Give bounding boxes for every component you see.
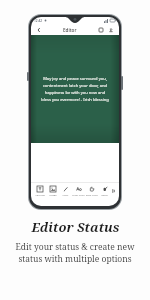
button[interactable]: Save xyxy=(107,26,115,34)
staticText: Color xyxy=(62,193,69,196)
button[interactable]: Back Color xyxy=(85,186,98,196)
button[interactable]: Front Color xyxy=(72,186,85,196)
button[interactable]: Reset xyxy=(98,186,111,196)
staticText: Editor Status xyxy=(31,218,120,236)
staticText: Editor xyxy=(63,27,77,33)
staticText: Edit your status & create new status wit… xyxy=(8,241,142,265)
button[interactable]: May joy and peace surround you, contentm… xyxy=(31,35,119,143)
button[interactable]: Add Text xyxy=(33,186,46,196)
staticText: Image xyxy=(49,193,57,196)
staticText: Back Color xyxy=(86,193,98,196)
button[interactable]: Back xyxy=(35,26,43,34)
button[interactable]: Crop xyxy=(97,26,105,34)
staticText: 12:42 xyxy=(34,19,43,23)
button[interactable]: Color xyxy=(59,186,72,196)
staticText: Front Color xyxy=(72,193,85,196)
staticText: Reset xyxy=(101,193,108,196)
staticText: May joy and peace surround you, contentm… xyxy=(40,76,110,102)
staticText: Add Text xyxy=(35,193,45,196)
button[interactable]: More xyxy=(111,188,117,194)
button[interactable]: Image xyxy=(46,186,59,196)
